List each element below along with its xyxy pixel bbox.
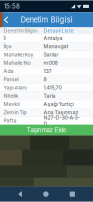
staticText: 137 [43,68,51,74]
staticText: m008 [43,60,57,66]
button[interactable]: Son uygulamalar [67,188,78,200]
staticText: Manavgat [43,43,68,50]
staticText: Detaylı Liste [43,28,73,34]
staticText: Mevkii [3,101,19,107]
button[interactable]: Detaylı Liste [43,28,73,34]
staticText: Mahalle/Köy [3,52,33,58]
staticText: İlçe [3,43,11,50]
staticText: Ada [3,68,13,74]
staticText: Parsel [3,76,18,83]
button[interactable]: Taşınmaz Ekle [0,125,93,136]
staticText: Aşağı Yurtiçi [43,101,73,107]
staticText: Pafta [3,118,16,124]
staticText: Denetim Bilgisi [3,28,37,34]
staticText: 1.415,70 [43,85,61,91]
staticText: Yapı Alanı [3,85,26,91]
staticText: Mahalle No [3,60,30,66]
staticText: Zemin Tip [3,109,26,116]
staticText: N27-D-30-A-3-D [43,114,79,127]
button[interactable]: Geri [15,188,25,200]
staticText: İl [3,35,5,41]
button[interactable]: Geri [0,11,12,29]
staticText: Tarla [43,93,55,99]
staticText: Denetim Bilgisi [20,15,72,24]
staticText: Taşınmaz Ekle [26,126,66,134]
button[interactable]: Ana ekran [40,188,52,200]
staticText: Sarılar [43,52,58,58]
staticText: Antalya [43,35,62,41]
staticText: 8 [43,76,46,83]
staticText: 15:58 [4,3,20,10]
staticText: Ana Taşınmaz [43,109,78,116]
staticText: Nitelik [3,93,18,99]
